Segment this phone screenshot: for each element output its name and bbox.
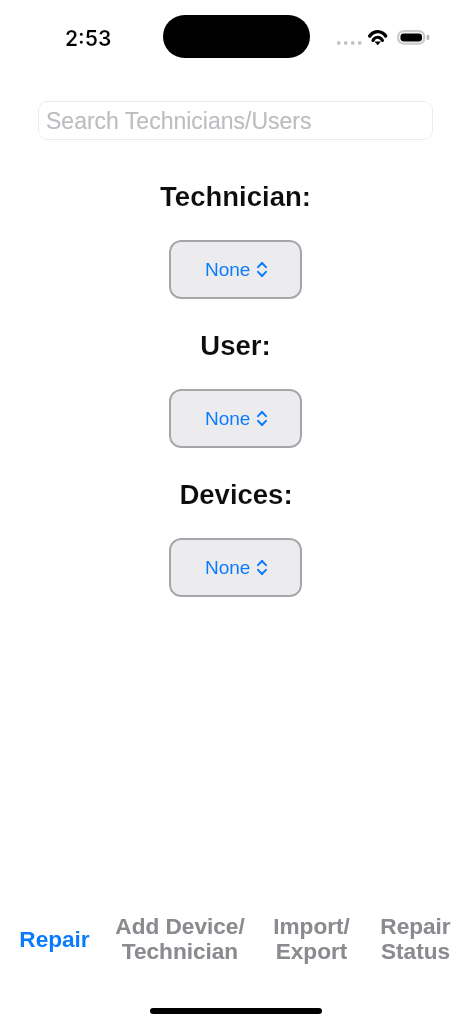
button[interactable]: Repair (0, 898, 108, 986)
button[interactable]: None (169, 538, 302, 597)
button[interactable]: Import/ Export (251, 898, 372, 986)
staticText: Search Technicians/Users (46, 108, 312, 134)
staticText: None (205, 259, 251, 280)
button[interactable]: None (169, 240, 302, 299)
staticText: 2:53 (65, 26, 112, 51)
staticText: Add Device/ Technician (115, 914, 245, 964)
other: Wi-Fi (367, 29, 390, 46)
staticText: Import/ Export (273, 914, 350, 964)
staticText: Devices: (179, 479, 293, 510)
staticText: None (205, 408, 251, 429)
button[interactable]: Search Technicians/Users (38, 101, 433, 140)
staticText: None (205, 557, 251, 578)
button[interactable]: Repair Status (372, 898, 459, 986)
staticText: Repair (19, 927, 90, 952)
button[interactable]: None (169, 389, 302, 448)
button[interactable]: Add Device/ Technician (108, 898, 251, 986)
staticText: User: (200, 330, 271, 361)
other: Cellular signal (337, 39, 361, 47)
staticText: Technician: (160, 181, 311, 212)
staticText: Repair Status (380, 914, 451, 964)
other: Battery (397, 30, 430, 46)
